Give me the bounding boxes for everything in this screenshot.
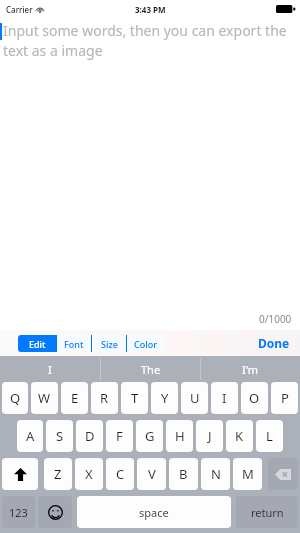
staticText: W [38, 389, 51, 407]
staticText: I [222, 389, 227, 407]
button[interactable]: Q [2, 382, 28, 414]
button[interactable]: space [77, 496, 231, 528]
button[interactable]: J [196, 420, 223, 452]
staticText: H [175, 427, 185, 445]
button[interactable]: H [166, 420, 193, 452]
button[interactable]: I [211, 382, 238, 414]
button[interactable]: G [136, 420, 163, 452]
button[interactable]: Font [57, 335, 91, 352]
staticText: Input some words, then you can export th… [3, 21, 288, 60]
button[interactable]: 123 [2, 496, 35, 528]
button[interactable]: F [106, 420, 133, 452]
staticText: Carrier [6, 4, 33, 15]
staticText: P [281, 389, 289, 407]
button[interactable]: Y [151, 382, 178, 414]
staticText: T [131, 389, 139, 407]
staticText: 123 [9, 505, 28, 520]
staticText: return [251, 505, 284, 520]
staticText: S [56, 427, 64, 445]
button[interactable]: S [46, 420, 73, 452]
button[interactable]: Color [127, 335, 163, 352]
staticText: space [139, 505, 169, 520]
button[interactable]: Emoji [38, 496, 72, 528]
button[interactable]: C [106, 458, 134, 490]
staticText: E [71, 389, 79, 407]
button[interactable]: U [181, 382, 208, 414]
staticText: Q [10, 389, 21, 407]
button[interactable]: K [226, 420, 253, 452]
button[interactable]: O [241, 382, 268, 414]
button[interactable]: Size [92, 335, 126, 352]
staticText: Edit [29, 338, 46, 350]
staticText: Color [134, 338, 157, 350]
staticText: U [190, 389, 200, 407]
button[interactable]: W [31, 382, 58, 414]
staticText: O [249, 389, 260, 407]
staticText: A [26, 427, 35, 445]
button[interactable]: D [76, 420, 103, 452]
staticText: F [116, 427, 123, 445]
staticText: D [85, 427, 95, 445]
staticText: The [141, 362, 161, 377]
staticText: Size [101, 338, 118, 350]
staticText: N [211, 465, 221, 483]
button[interactable]: return [236, 496, 298, 528]
staticText: X [85, 465, 93, 483]
staticText: L [266, 427, 273, 445]
staticText: I [48, 362, 52, 377]
button[interactable]: M [233, 458, 262, 490]
button[interactable]: P [271, 382, 298, 414]
button[interactable]: I'm [201, 356, 300, 382]
staticText: I'm [242, 362, 259, 377]
button[interactable]: Edit [18, 335, 56, 352]
button[interactable]: R [91, 382, 118, 414]
button[interactable]: Z [44, 458, 72, 490]
button[interactable]: A [17, 420, 43, 452]
button[interactable]: X [75, 458, 103, 490]
staticText: K [235, 427, 244, 445]
button[interactable]: Backspace [268, 458, 298, 490]
staticText: C [116, 465, 125, 483]
staticText: Z [54, 465, 62, 483]
staticText: Done [258, 335, 290, 351]
staticText: B [179, 465, 188, 483]
button[interactable]: I [0, 356, 100, 382]
button[interactable]: B [169, 458, 198, 490]
button[interactable]: Shift [2, 458, 38, 490]
button[interactable]: T [121, 382, 148, 414]
button[interactable]: The [101, 356, 200, 382]
staticText: M [242, 465, 254, 483]
staticText: 0/1000 [259, 312, 292, 326]
button[interactable]: Done [258, 335, 290, 351]
staticText: V [148, 465, 156, 483]
staticText: Y [161, 389, 169, 407]
button[interactable]: L [256, 420, 283, 452]
button[interactable]: N [201, 458, 230, 490]
staticText: 3:43 PM [135, 4, 166, 15]
staticText: R [100, 389, 109, 407]
button[interactable]: E [61, 382, 88, 414]
staticText: G [145, 427, 155, 445]
staticText: Font [64, 338, 84, 350]
staticText: J [208, 427, 212, 445]
button[interactable]: V [137, 458, 166, 490]
